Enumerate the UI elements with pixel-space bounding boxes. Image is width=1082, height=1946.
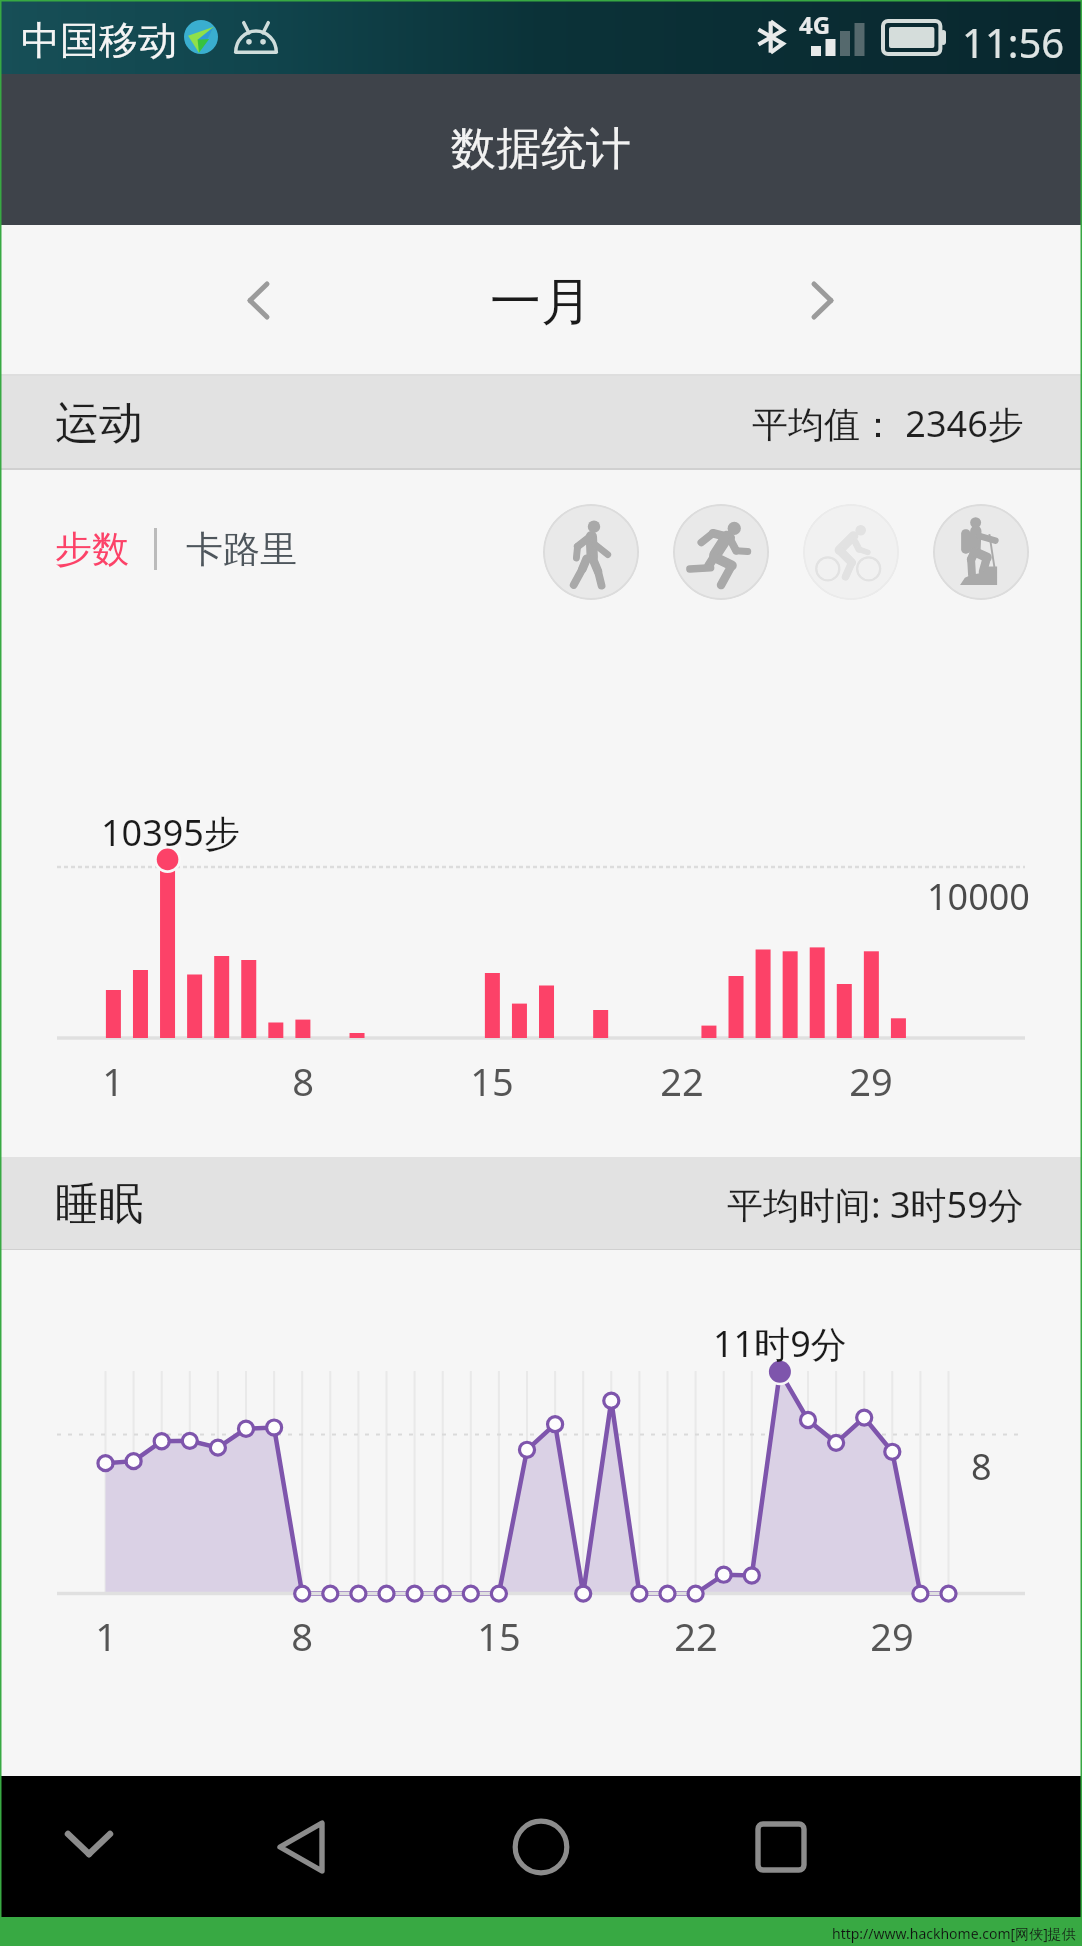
- staticText: 8: [292, 1055, 314, 1107]
- button[interactable]: Back: [251, 1776, 351, 1917]
- staticText: 平均时间: 3时59分: [727, 1180, 1024, 1229]
- staticText: 1: [102, 1055, 124, 1107]
- staticText: 8: [291, 1610, 313, 1662]
- staticText: 8: [971, 1442, 992, 1491]
- button[interactable]: Running: [673, 504, 769, 600]
- staticText: http://www.hackhome.com[网侠]提供: [832, 1924, 1076, 1943]
- staticText: 一月: [490, 270, 592, 334]
- staticText: 10000: [927, 872, 1030, 921]
- staticText: 29: [870, 1610, 914, 1662]
- button[interactable]: Recent apps: [731, 1776, 831, 1917]
- staticText: 睡眠: [55, 1177, 143, 1232]
- staticText: 平均值： 2346步: [752, 399, 1024, 448]
- button[interactable]: Walking: [543, 504, 639, 600]
- button[interactable]: 卡路里: [186, 526, 297, 573]
- button[interactable]: 步数: [55, 526, 129, 573]
- staticText: 15: [477, 1610, 521, 1662]
- button[interactable]: Next month: [772, 245, 872, 355]
- staticText: 步数: [55, 526, 129, 573]
- staticText: 1: [95, 1610, 117, 1662]
- button[interactable]: Climbing: [933, 504, 1029, 600]
- staticText: 11时9分: [713, 1319, 847, 1368]
- staticText: 22: [660, 1055, 704, 1107]
- staticText: 运动: [55, 396, 143, 451]
- staticText: 10395步: [101, 808, 240, 857]
- staticText: 29: [849, 1055, 893, 1107]
- staticText: 11:56: [962, 15, 1065, 69]
- staticText: 数据统计: [451, 121, 631, 178]
- staticText: 4G: [799, 8, 831, 41]
- staticText: 15: [470, 1055, 514, 1107]
- button[interactable]: Hide keyboard: [39, 1776, 139, 1917]
- button[interactable]: Home: [491, 1776, 591, 1917]
- staticText: 22: [674, 1610, 718, 1662]
- staticText: 卡路里: [186, 526, 297, 573]
- button[interactable]: Previous month: [208, 245, 308, 355]
- button[interactable]: Cycling: [803, 504, 899, 600]
- staticText: 中国移动: [21, 16, 177, 65]
